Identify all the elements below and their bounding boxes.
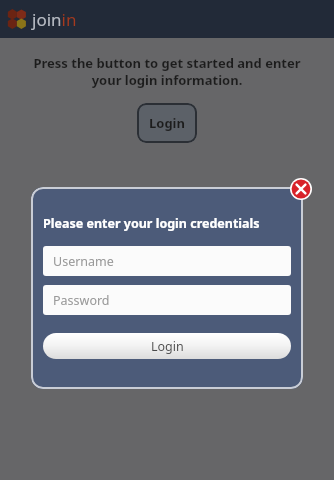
button[interactable]: Close [290, 178, 312, 200]
button[interactable]: Login [137, 103, 197, 143]
staticText: Login [149, 114, 185, 132]
button[interactable]: Login [43, 333, 291, 359]
button[interactable]: Password [43, 285, 291, 315]
button[interactable]: Username [43, 246, 291, 276]
staticText: joinin [32, 8, 77, 31]
staticText: Please enter your login credentials [43, 215, 260, 232]
staticText: Login [151, 338, 184, 355]
staticText: Username [53, 253, 114, 270]
staticText: Press the button to get started and ente… [22, 54, 312, 89]
staticText: Password [53, 292, 110, 309]
